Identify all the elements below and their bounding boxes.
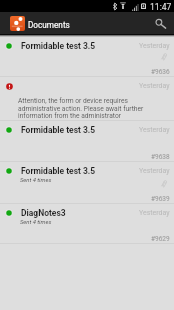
staticText: Yesterday: [139, 82, 170, 90]
button[interactable]: Formidable test 3.5: [0, 37, 174, 76]
staticText: #9636: [151, 68, 170, 76]
button[interactable]: Formidable test 3.5: [0, 121, 174, 161]
staticText: #9638: [151, 153, 170, 161]
staticText: Sent 4 times: [20, 219, 52, 226]
staticText: Yesterday: [139, 42, 170, 50]
staticText: Formidable test 3.5: [21, 41, 96, 51]
staticText: Formidable test 3.5: [21, 166, 96, 176]
staticText: DiagNotes3: [21, 208, 66, 218]
staticText: #9639: [151, 195, 170, 203]
button[interactable]: Yesterday: [0, 77, 174, 120]
button[interactable]: Documents app icon: [10, 16, 25, 31]
staticText: Sent 4 times: [20, 177, 52, 184]
staticText: #9629: [151, 235, 170, 243]
staticText: Formidable test 3.5: [21, 125, 96, 135]
staticText: Attention, the form or device requires a…: [18, 97, 146, 119]
staticText: Yesterday: [139, 209, 170, 217]
button[interactable]: Search: [148, 13, 168, 33]
staticText: Documents: [28, 20, 70, 30]
staticText: 11:47: [150, 2, 172, 12]
button[interactable]: DiagNotes3: [0, 204, 174, 243]
staticText: Yesterday: [139, 126, 170, 134]
staticText: Yesterday: [139, 167, 170, 175]
button[interactable]: Formidable test 3.5: [0, 162, 174, 203]
